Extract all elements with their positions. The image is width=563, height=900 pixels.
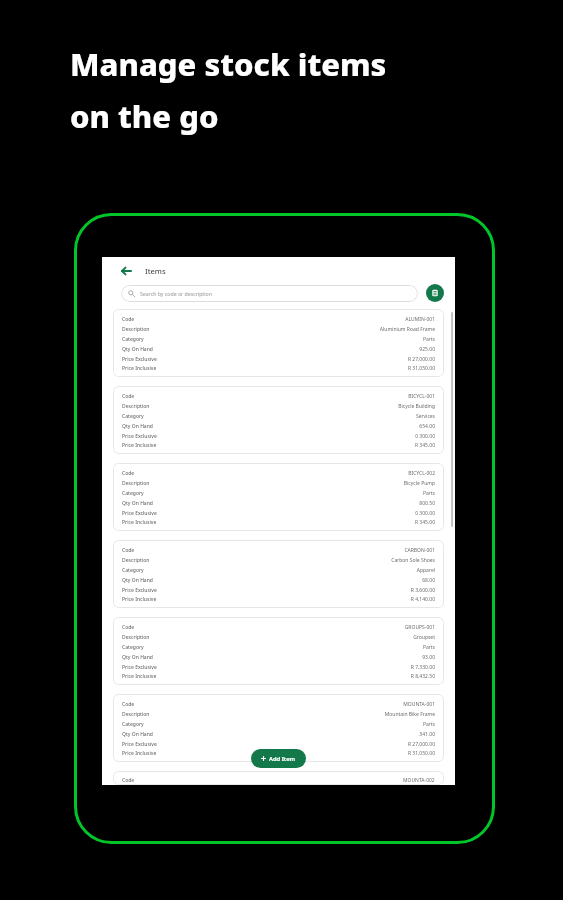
staticText: Qty On Hand xyxy=(122,423,153,430)
staticText: Code xyxy=(122,547,135,554)
button[interactable]: Filter xyxy=(426,284,444,302)
staticText: Code xyxy=(122,316,135,323)
staticText: Category xyxy=(122,490,144,497)
staticText: Description xyxy=(122,403,150,410)
staticText: Description xyxy=(122,711,150,718)
staticText: BICYCL-001 xyxy=(408,393,435,400)
staticText: R 345.00 xyxy=(414,442,435,449)
staticText: 93.00 xyxy=(422,654,435,661)
staticText: Qty On Hand xyxy=(122,577,153,584)
staticText: Qty On Hand xyxy=(122,654,153,661)
button[interactable]: Code xyxy=(113,694,444,762)
staticText: Price Exclusive xyxy=(122,356,157,363)
staticText: BICYCL-002 xyxy=(408,470,435,477)
staticText: Price Exclusive xyxy=(122,433,157,440)
button[interactable]: Back xyxy=(119,264,133,278)
staticText: Category xyxy=(122,721,144,728)
staticText: Manage stock items xyxy=(70,43,387,85)
staticText: Bicycle Pump xyxy=(403,480,435,487)
staticText: Code xyxy=(122,624,135,631)
staticText: Category xyxy=(122,567,144,574)
staticText: R 8,432.50 xyxy=(410,673,435,680)
staticText: Category xyxy=(122,413,144,420)
staticText: Qty On Hand xyxy=(122,346,153,353)
staticText: Price Exclusive xyxy=(122,510,157,517)
button[interactable]: Code xyxy=(113,771,444,785)
button[interactable]: Search by code or description xyxy=(121,285,418,302)
staticText: Price Exclusive xyxy=(122,664,157,671)
button[interactable]: Code xyxy=(113,617,444,685)
button[interactable]: Add Item xyxy=(251,749,306,768)
staticText: Bicycle Building xyxy=(398,403,435,410)
staticText: R 31,050.00 xyxy=(407,750,435,757)
staticText: ALUMIN-001 xyxy=(405,316,435,323)
staticText: Code xyxy=(122,777,135,784)
staticText: Code xyxy=(122,470,135,477)
staticText: Mountain Bike Frame xyxy=(384,711,435,718)
staticText: 925.00 xyxy=(419,346,435,353)
staticText: Add Item xyxy=(269,755,296,763)
staticText: 0 300.00 xyxy=(415,433,435,440)
staticText: Code xyxy=(122,701,135,708)
staticText: on the go xyxy=(70,95,219,137)
staticText: Description xyxy=(122,480,150,487)
staticText: Description xyxy=(122,557,150,564)
staticText: Price Inclusive xyxy=(122,442,157,449)
staticText: MOUNTA-002 xyxy=(403,777,435,784)
staticText: Description xyxy=(122,326,150,333)
staticText: 68.00 xyxy=(422,577,435,584)
staticText: Items xyxy=(145,266,166,276)
staticText: Parts xyxy=(422,721,435,728)
staticText: 654.00 xyxy=(419,423,435,430)
staticText: Category xyxy=(122,336,144,343)
staticText: R 7,330.00 xyxy=(410,664,435,671)
staticText: R 31,050.00 xyxy=(407,365,435,372)
staticText: Qty On Hand xyxy=(122,731,153,738)
staticText: 0 300.00 xyxy=(415,510,435,517)
staticText: Carbon Sole Shoes xyxy=(391,557,435,564)
staticText: R 27,000.00 xyxy=(407,741,435,748)
staticText: R 345.00 xyxy=(414,519,435,526)
staticText: Parts xyxy=(422,644,435,651)
staticText: CARBON-001 xyxy=(404,547,435,554)
staticText: Price Inclusive xyxy=(122,365,157,372)
staticText: Price Exclusive xyxy=(122,741,157,748)
staticText: Apparel xyxy=(416,567,435,574)
staticText: R 27,000.00 xyxy=(407,356,435,363)
staticText: Price Inclusive xyxy=(122,519,157,526)
button[interactable]: Code xyxy=(113,386,444,454)
staticText: Aluminium Road Frame xyxy=(379,326,435,333)
staticText: Parts xyxy=(422,490,435,497)
staticText: MOUNTA-001 xyxy=(403,701,435,708)
staticText: Price Inclusive xyxy=(122,750,157,757)
staticText: R 4,140.00 xyxy=(410,596,435,603)
staticText: Parts xyxy=(422,336,435,343)
button[interactable]: Code xyxy=(113,540,444,608)
staticText: Price Inclusive xyxy=(122,596,157,603)
staticText: Price Inclusive xyxy=(122,673,157,680)
staticText: Code xyxy=(122,393,135,400)
staticText: Search by code or description xyxy=(140,290,212,297)
button[interactable]: Code xyxy=(113,463,444,531)
staticText: Qty On Hand xyxy=(122,500,153,507)
staticText: Price Exclusive xyxy=(122,587,157,594)
staticText: R 3,600.00 xyxy=(410,587,435,594)
staticText: 341.00 xyxy=(419,731,435,738)
staticText: Groupset xyxy=(413,634,435,641)
staticText: Services xyxy=(415,413,435,420)
staticText: Category xyxy=(122,644,144,651)
staticText: GROUPS-001 xyxy=(404,624,435,631)
button[interactable]: Code xyxy=(113,309,444,377)
staticText: 800.50 xyxy=(419,500,435,507)
staticText: Description xyxy=(122,634,150,641)
